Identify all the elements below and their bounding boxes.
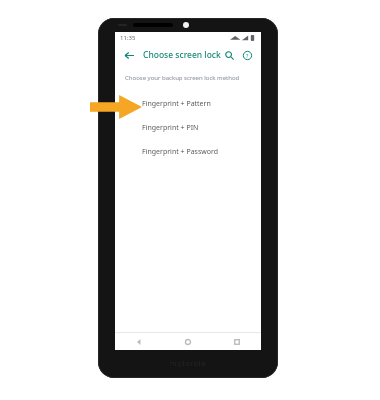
button[interactable]: Fingerprint + PIN [115, 116, 261, 140]
staticText: 11:35 [120, 34, 136, 42]
button[interactable]: Help [240, 47, 255, 63]
staticText: motorola [170, 359, 206, 369]
staticText: Fingerprint + PIN [142, 123, 199, 133]
staticText: ? [246, 52, 249, 59]
staticText: Choose your backup screen lock method [125, 74, 240, 82]
button[interactable]: Back [121, 47, 137, 63]
staticText: Fingerprint + Pattern [142, 99, 211, 109]
button[interactable]: Search [221, 47, 237, 63]
button[interactable]: Recents [212, 333, 261, 350]
button[interactable]: Back [115, 333, 163, 350]
button[interactable]: Fingerprint + Pattern [115, 92, 261, 116]
staticText: Fingerprint + Password [142, 147, 219, 157]
staticText: Choose screen lock [143, 49, 221, 61]
button[interactable]: Home [163, 333, 212, 350]
button[interactable]: Fingerprint + Password [115, 140, 261, 164]
